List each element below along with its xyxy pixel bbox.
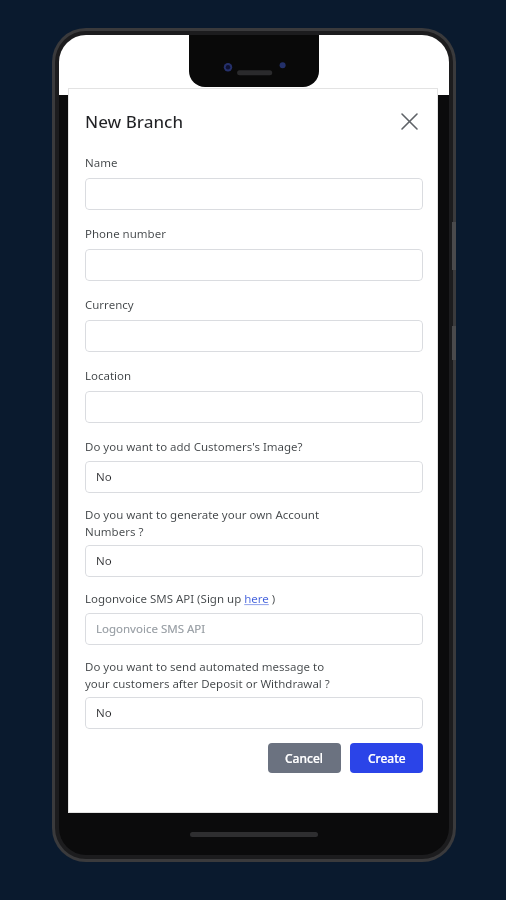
staticText: No [96, 705, 112, 721]
button[interactable]: Logonvoice SMS API [85, 613, 423, 645]
button[interactable]: Close [395, 107, 423, 135]
button[interactable] [85, 178, 423, 210]
button[interactable]: Create [350, 743, 423, 773]
staticText: No [96, 469, 112, 485]
staticText: Create [368, 750, 406, 766]
staticText: Logonvoice SMS API [96, 621, 206, 637]
staticText: Logonvoice SMS API (Sign up here ) [85, 591, 276, 607]
staticText: Do you want to generate your own Account… [85, 507, 320, 539]
button[interactable]: No [85, 545, 423, 577]
staticText: New Branch [85, 110, 184, 133]
button[interactable] [85, 391, 423, 423]
staticText: Do you want to add Customers's Image? [85, 439, 303, 455]
staticText: Phone number [85, 226, 166, 242]
button[interactable]: Cancel [268, 743, 341, 773]
button[interactable] [85, 320, 423, 352]
button[interactable]: Logonvoice SMS API (Sign up here ) [85, 591, 276, 607]
button[interactable]: No [85, 461, 423, 493]
staticText: No [96, 553, 112, 569]
staticText: Location [85, 368, 132, 384]
staticText: Do you want to send automated message to… [85, 659, 330, 691]
button[interactable] [85, 249, 423, 281]
button[interactable]: No [85, 697, 423, 729]
staticText: Currency [85, 297, 134, 313]
staticText: Cancel [285, 750, 324, 766]
staticText: Name [85, 155, 118, 171]
